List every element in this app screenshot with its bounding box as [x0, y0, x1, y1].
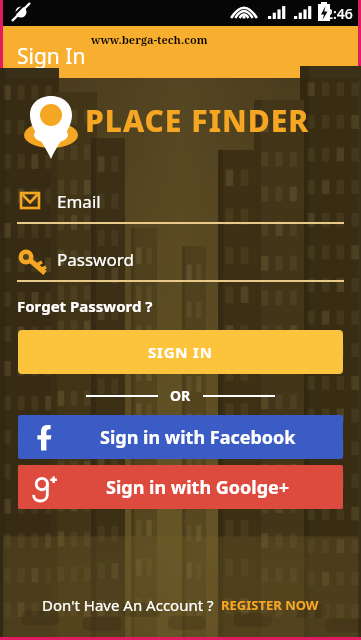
staticText: 2:46	[325, 4, 353, 23]
button[interactable]: Email	[17, 188, 344, 224]
staticText: Sign In	[17, 42, 86, 71]
staticText: www.berga-tech.com	[91, 32, 208, 47]
staticText: SIGN IN	[148, 342, 213, 362]
staticText: Password	[57, 248, 134, 271]
button[interactable]: Forget Password ?	[17, 296, 153, 316]
staticText: Email	[57, 190, 101, 213]
staticText: OR	[170, 386, 191, 405]
staticText: PLACE FINDER	[85, 100, 310, 141]
button[interactable]: Password	[17, 246, 344, 282]
button[interactable]: Sign in with Google Plus	[18, 465, 343, 509]
staticText: Don't Have An Account ?	[42, 595, 214, 615]
button[interactable]: SIGN IN	[18, 330, 343, 374]
staticText: Sign in with Facebook	[100, 425, 296, 450]
button[interactable]: REGISTER NOW	[221, 596, 319, 614]
button[interactable]: Sign in with Facebook	[18, 415, 343, 459]
staticText: Sign in with Goolge+	[106, 475, 290, 500]
